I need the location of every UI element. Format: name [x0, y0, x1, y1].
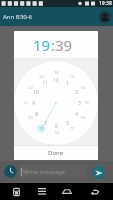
staticText: 4	[75, 111, 78, 117]
staticText: Done	[48, 149, 64, 157]
staticText: 8	[35, 111, 38, 117]
staticText: 6	[55, 123, 58, 129]
button[interactable]: Write message	[19, 165, 86, 179]
staticText: 9	[32, 100, 35, 106]
staticText: 19	[39, 126, 44, 132]
button[interactable]: 19	[33, 35, 51, 55]
staticText: 14	[80, 85, 85, 91]
button[interactable]: Screenshot	[9, 183, 23, 200]
staticText: 22	[28, 85, 33, 91]
staticText: 11	[42, 80, 48, 86]
staticText: 3	[78, 100, 81, 106]
button[interactable]: :39	[51, 35, 73, 55]
staticText: 00	[54, 70, 59, 76]
button[interactable]: Done	[14, 146, 98, 160]
staticText: 16	[80, 115, 85, 121]
staticText: 2	[75, 89, 78, 95]
button[interactable]: Recents	[35, 183, 49, 200]
staticText: 7	[44, 120, 47, 126]
button[interactable]: Send	[92, 166, 105, 179]
staticText: 1	[66, 80, 69, 86]
staticText: 17	[69, 126, 74, 132]
button[interactable]: Back	[87, 183, 101, 200]
staticText: 19:38	[99, 0, 112, 7]
staticText: Ann B30-6	[3, 13, 32, 21]
staticText: 23	[39, 74, 44, 80]
button[interactable]: Contact avatar	[99, 11, 111, 23]
staticText: 21	[24, 100, 29, 106]
staticText: 15	[84, 100, 89, 106]
staticText: 18	[54, 130, 59, 136]
staticText: Write message	[23, 168, 65, 176]
staticText: 12	[53, 77, 59, 83]
staticText: 20	[28, 115, 33, 121]
staticText: 5	[66, 120, 69, 126]
staticText: 10	[33, 89, 39, 95]
button[interactable]: Home	[60, 183, 74, 200]
button[interactable]: Schedule message	[4, 165, 17, 178]
staticText: 13	[69, 74, 74, 80]
